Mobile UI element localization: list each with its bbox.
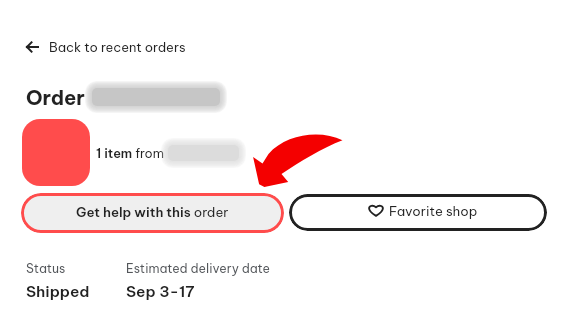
staticText: Order xyxy=(26,85,85,110)
staticText: Estimated delivery date xyxy=(126,261,270,277)
staticText: Shipped xyxy=(26,282,90,301)
button[interactable]: Favorite shop xyxy=(289,194,547,231)
staticText: Status xyxy=(26,261,66,277)
staticText: Sep 3-17 xyxy=(126,282,195,301)
button[interactable]: Item photo xyxy=(22,119,90,186)
button[interactable]: Back to recent orders xyxy=(20,33,192,61)
staticText: Favorite shop xyxy=(389,203,478,220)
staticText: 1 item from xyxy=(96,145,164,161)
staticText: Get help with this order xyxy=(76,204,229,221)
staticText: Back to recent orders xyxy=(49,39,186,55)
button[interactable]: Get help with this order xyxy=(21,193,284,233)
